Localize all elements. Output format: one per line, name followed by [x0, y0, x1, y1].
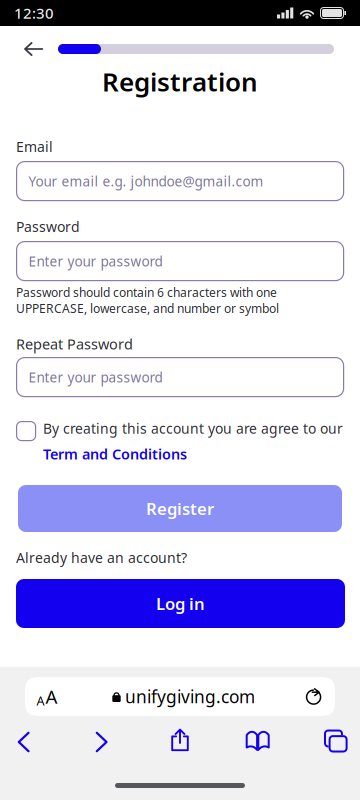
button[interactable]: Term and Conditions	[43, 444, 187, 464]
staticText: By creating this account you are agree t…	[43, 419, 343, 438]
button[interactable]: Back	[24, 42, 43, 56]
staticText: Term and Conditions	[43, 444, 187, 464]
staticText: 12:30	[14, 3, 54, 23]
button[interactable]: Tabs	[318, 727, 354, 755]
button[interactable]: Log in	[16, 579, 345, 628]
staticText: Password should contain 6 characters wit…	[16, 284, 277, 300]
button[interactable]: Bookmarks	[240, 727, 276, 755]
staticText: unifygiving.com	[125, 685, 255, 708]
staticText: Enter your password	[29, 252, 163, 270]
staticText: A	[45, 684, 57, 709]
staticText: Log in	[156, 592, 205, 615]
staticText: Registration	[102, 64, 258, 99]
button[interactable]: Agree to terms and conditions	[17, 422, 36, 441]
staticText: Repeat Password	[16, 334, 133, 354]
staticText: UPPERCASE, lowercase, and number or symb…	[16, 300, 279, 316]
button[interactable]: Reload	[300, 677, 328, 716]
staticText: Your email e.g. johndoe@gmail.com	[29, 172, 264, 190]
staticText: Already have an account?	[16, 548, 187, 567]
button[interactable]: Page settings	[33, 677, 61, 716]
staticText: Email	[16, 137, 53, 156]
button[interactable]: Back	[6, 728, 42, 756]
staticText: Enter your password	[29, 368, 163, 386]
button[interactable]: Share	[162, 725, 198, 755]
button[interactable]: Forward	[84, 728, 120, 756]
staticText: Register	[146, 497, 214, 520]
staticText: Password	[16, 217, 80, 236]
staticText: A	[36, 692, 44, 709]
button[interactable]: Register	[18, 485, 342, 532]
